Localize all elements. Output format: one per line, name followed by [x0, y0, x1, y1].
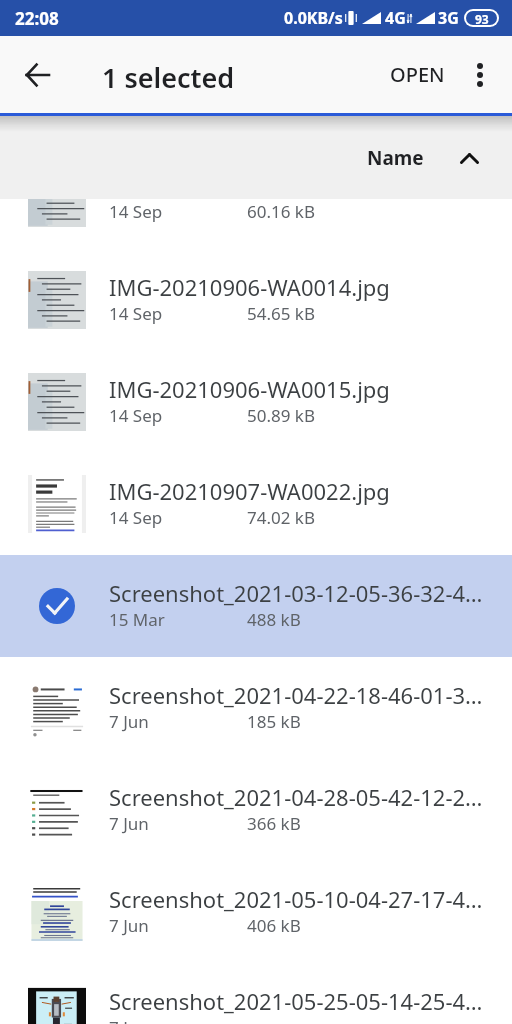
- staticText: 74.02 kB: [247, 506, 315, 529]
- button[interactable]: More options: [457, 52, 503, 98]
- staticText: 1 selected: [102, 59, 235, 96]
- staticText: 7 Jun: [109, 1016, 247, 1024]
- staticText: OPEN: [390, 61, 445, 88]
- staticText: 60.16 kB: [247, 200, 315, 223]
- staticText: 14 Sep: [109, 506, 247, 529]
- staticText: 93: [475, 11, 489, 25]
- staticText: Screenshot_2021-03-12-05-36-32-43.png: [109, 578, 489, 608]
- button[interactable]: Screenshot_2021-03-12-05-36-32-43.png: [0, 555, 512, 657]
- staticText: Screenshot_2021-05-10-04-27-17-456.png: [109, 884, 489, 914]
- staticText: 7 Jun: [109, 914, 247, 937]
- staticText: 50.89 kB: [247, 404, 315, 427]
- button[interactable]: IMG-20210906-WA0013.jpg: [0, 199, 512, 249]
- staticText: 185 kB: [247, 710, 301, 733]
- button[interactable]: Name: [367, 145, 479, 171]
- staticText: 488 kB: [247, 608, 301, 631]
- staticText: 0.0KB/s: [284, 7, 343, 29]
- staticText: Name: [367, 145, 424, 171]
- staticText: 22:08: [15, 7, 59, 30]
- staticText: 14 Sep: [109, 302, 247, 325]
- staticText: 14 Sep: [109, 404, 247, 427]
- staticText: 3G: [438, 7, 459, 29]
- button[interactable]: OPEN: [378, 51, 457, 98]
- button[interactable]: Back: [13, 51, 61, 99]
- staticText: Screenshot_2021-04-28-05-42-12-234.png: [109, 782, 489, 812]
- button[interactable]: IMG-20210906-WA0014.jpg: [0, 249, 512, 351]
- staticText: Screenshot_2021-04-22-18-46-01-356.png: [109, 680, 489, 710]
- staticText: IMG-20210906-WA0015.jpg: [109, 374, 390, 404]
- staticText: 54.65 kB: [247, 302, 315, 325]
- staticText: 366 kB: [247, 812, 301, 835]
- staticText: 406 kB: [247, 914, 301, 937]
- staticText: 7 Jun: [109, 710, 247, 733]
- button[interactable]: Screenshot_2021-04-22-18-46-01-356.png: [0, 657, 512, 759]
- button[interactable]: IMG-20210906-WA0015.jpg: [0, 351, 512, 453]
- staticText: 14 Sep: [109, 200, 247, 223]
- staticText: Screenshot_2021-05-25-05-14-25-432.png: [109, 986, 489, 1016]
- staticText: 7 Jun: [109, 812, 247, 835]
- staticText: IMG-20210906-WA0014.jpg: [109, 272, 390, 302]
- staticText: 4G: [385, 7, 406, 29]
- button[interactable]: Screenshot_2021-05-10-04-27-17-456.png: [0, 861, 512, 963]
- button[interactable]: Screenshot_2021-05-25-05-14-25-432.png: [0, 963, 512, 1024]
- button[interactable]: Screenshot_2021-04-28-05-42-12-234.png: [0, 759, 512, 861]
- staticText: 15 Mar: [109, 608, 247, 631]
- staticText: IMG-20210907-WA0022.jpg: [109, 476, 390, 506]
- button[interactable]: IMG-20210907-WA0022.jpg: [0, 453, 512, 555]
